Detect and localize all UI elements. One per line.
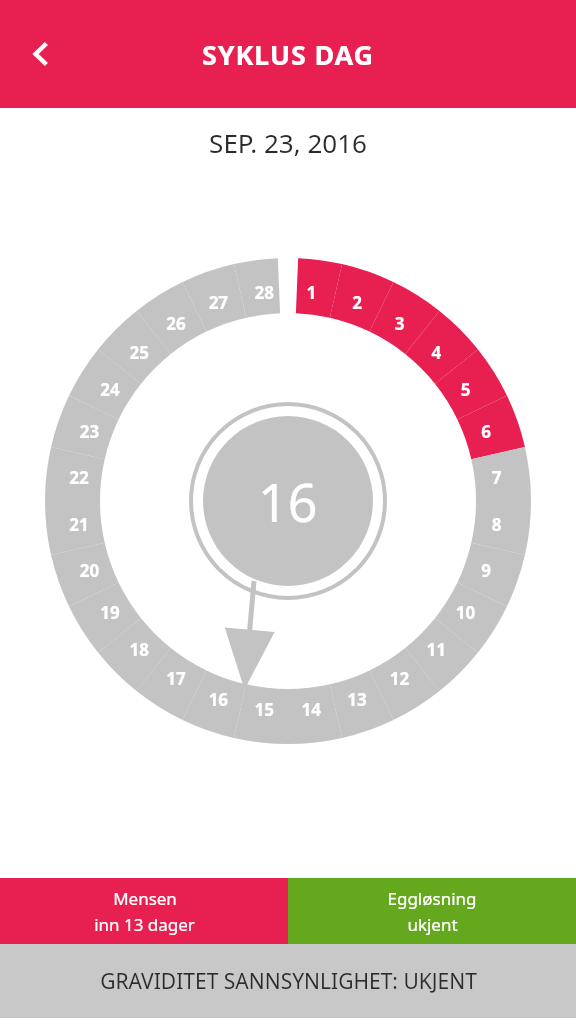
staticText: inn 13 dager xyxy=(94,913,195,936)
staticText: GRAVIDITET SANNSYNLIGHET: UKJENT xyxy=(100,967,477,996)
button[interactable]: Eggløsning xyxy=(288,878,576,944)
button[interactable]: GRAVIDITET SANNSYNLIGHET: UKJENT xyxy=(0,944,576,1018)
staticText: SYKLUS DAG xyxy=(202,36,374,73)
button[interactable]: Mensen xyxy=(0,878,288,944)
button[interactable]: Back xyxy=(12,25,70,83)
staticText: SEP. 23, 2016 xyxy=(209,125,367,160)
staticText: ukjent xyxy=(407,913,458,936)
staticText: Eggløsning xyxy=(387,887,477,910)
staticText: Mensen xyxy=(113,887,177,910)
